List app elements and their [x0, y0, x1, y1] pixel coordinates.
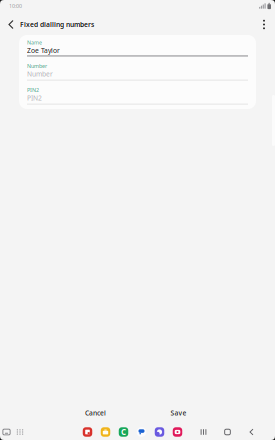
staticText: Save [170, 409, 186, 417]
button[interactable]: Fixed dialling numbers [20, 13, 94, 35]
button[interactable]: Calculator [119, 427, 128, 437]
button[interactable]: Back [4, 13, 18, 35]
button[interactable]: More options [256, 13, 272, 35]
button[interactable]: Recent apps [198, 426, 209, 438]
staticText: Number [27, 62, 47, 70]
button[interactable]: Cancel [54, 406, 137, 420]
button[interactable]: Save [137, 406, 220, 420]
staticText: Zoe Taylor [27, 46, 60, 55]
button[interactable]: Internet [155, 427, 164, 437]
staticText: 10:00 [9, 2, 22, 10]
staticText: Cancel [85, 409, 106, 417]
staticText: C [121, 427, 126, 437]
button[interactable]: Flipboard [83, 427, 92, 437]
staticText: Number [27, 70, 53, 78]
button[interactable]: All apps [15, 426, 25, 438]
button[interactable]: Back [246, 426, 257, 438]
staticText: Name [27, 39, 42, 46]
button[interactable]: Messages [137, 427, 146, 437]
button[interactable]: Home [222, 426, 233, 438]
staticText: PIN2 [27, 86, 39, 94]
button[interactable]: My Files [101, 427, 110, 437]
staticText: Fixed dialling numbers [20, 20, 94, 29]
button[interactable]: Camera [173, 427, 182, 437]
button[interactable]: Recents [1, 426, 12, 438]
staticText: PIN2 [27, 94, 42, 102]
